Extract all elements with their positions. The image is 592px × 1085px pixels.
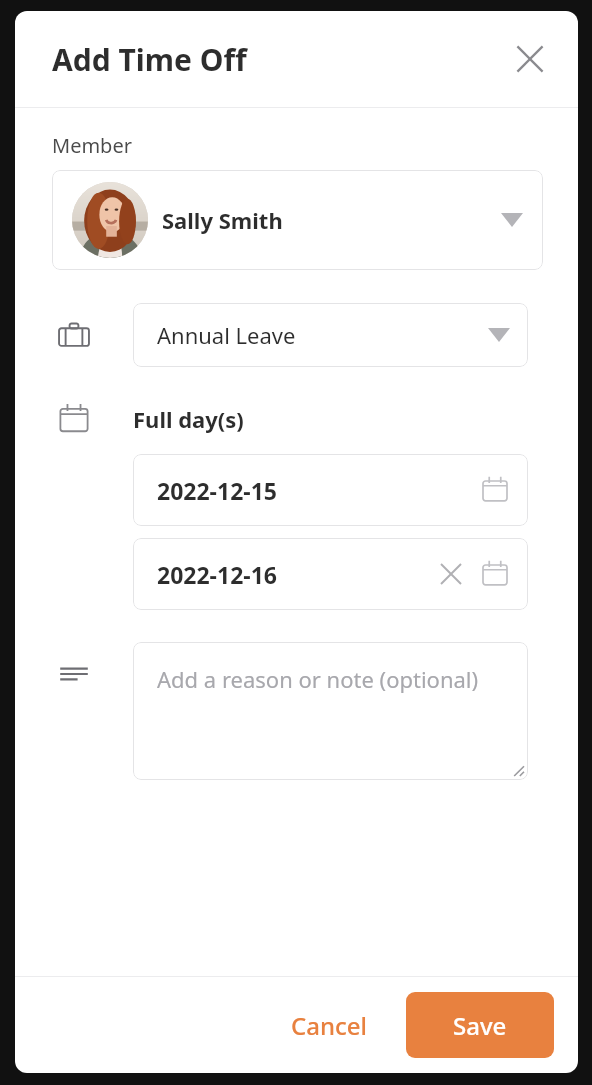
staticText: 2022-12-15: [157, 475, 277, 506]
button[interactable]: Cancel: [269, 997, 390, 1054]
staticText: Save: [453, 1009, 507, 1042]
staticText: Add a reason or note (optional): [157, 664, 479, 694]
button[interactable]: Annual Leave: [133, 303, 528, 367]
staticText: Annual Leave: [157, 320, 296, 350]
button[interactable]: Add a reason or note (optional): [133, 642, 528, 780]
staticText: Member: [52, 132, 132, 159]
button[interactable]: Clear date: [434, 557, 468, 591]
staticText: Cancel: [291, 1009, 368, 1042]
staticText: Add Time Off: [52, 39, 247, 80]
button[interactable]: Sally Smith: [52, 170, 543, 270]
button[interactable]: 2022-12-16: [133, 538, 528, 610]
staticText: Sally Smith: [162, 205, 283, 235]
button[interactable]: Save: [406, 992, 554, 1058]
staticText: Full day(s): [133, 404, 244, 434]
button[interactable]: Pick date: [476, 555, 514, 593]
staticText: 2022-12-16: [157, 559, 277, 590]
button[interactable]: Close: [508, 37, 552, 81]
button[interactable]: Pick date: [476, 471, 514, 509]
button[interactable]: 2022-12-15: [133, 454, 528, 526]
